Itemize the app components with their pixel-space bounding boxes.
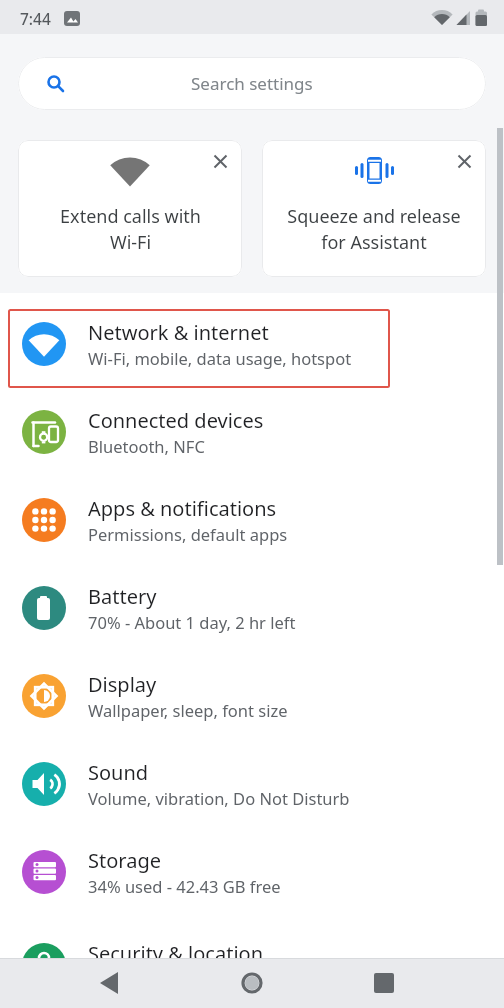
staticText: Connected devices	[88, 407, 264, 434]
button[interactable]	[168, 958, 336, 1008]
button[interactable]	[0, 958, 168, 1008]
staticText: 34% used - 42.43 GB free	[88, 875, 281, 897]
staticText: Extend calls with Wi-Fi	[60, 204, 201, 255]
button[interactable]: Search settings	[18, 57, 486, 110]
staticText: Volume, vibration, Do Not Disturb	[88, 787, 350, 809]
staticText: Wallpaper, sleep, font size	[88, 699, 288, 721]
staticText: Network & internet	[88, 319, 269, 346]
button[interactable]: Storage	[0, 828, 504, 916]
button[interactable]: Security & location	[0, 921, 504, 1008]
staticText: Wi-Fi, mobile, data usage, hotspot	[88, 347, 352, 369]
staticText: Display	[88, 671, 157, 698]
staticText: 70% - About 1 day, 2 hr left	[88, 611, 296, 633]
staticText: Storage	[88, 847, 161, 874]
staticText: Battery	[88, 583, 157, 610]
button[interactable]: Sound	[0, 740, 504, 828]
staticText: Search settings	[191, 72, 313, 95]
staticText: Sound	[88, 759, 149, 786]
staticText: Permissions, default apps	[88, 523, 288, 545]
staticText: Bluetooth, NFC	[88, 435, 205, 457]
staticText: Security & location	[88, 940, 264, 967]
button[interactable]: Extend calls with Wi-Fi	[18, 140, 242, 277]
staticText: Screen lock, fingerprint	[88, 968, 269, 990]
button[interactable]: Apps & notifications	[0, 476, 504, 564]
staticText: Squeeze and release for Assistant	[287, 204, 461, 255]
button[interactable]: Squeeze and release for Assistant	[262, 140, 486, 277]
staticText: 7:44	[20, 8, 51, 29]
button[interactable]: Connected devices	[0, 388, 504, 476]
staticText: Apps & notifications	[88, 495, 277, 522]
button[interactable]: Battery	[0, 564, 504, 652]
button[interactable]: Display	[0, 652, 504, 740]
button[interactable]	[336, 958, 504, 1008]
button[interactable]: Network & internet	[0, 300, 504, 388]
